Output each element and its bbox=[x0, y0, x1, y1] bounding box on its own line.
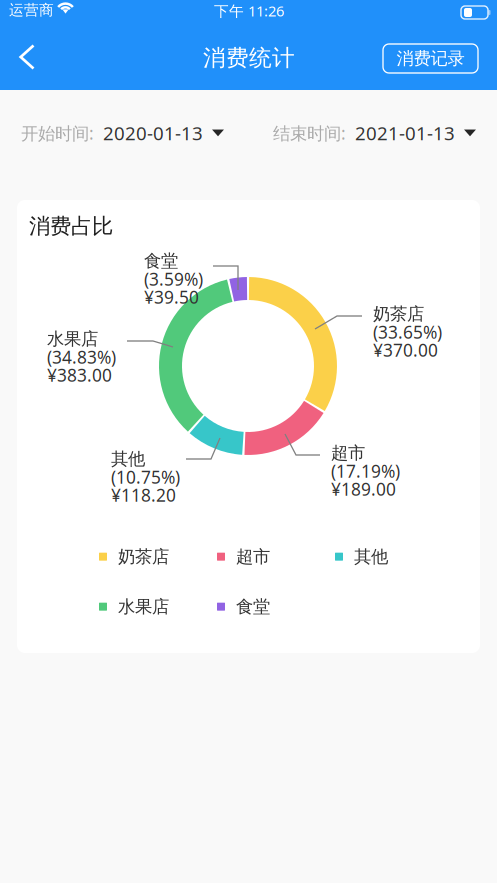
staticText: (3.59%) bbox=[144, 267, 203, 290]
button[interactable]: 开始时间: bbox=[21, 121, 224, 145]
staticText: 食堂 bbox=[144, 250, 178, 272]
staticText: 奶茶店 bbox=[118, 546, 169, 567]
staticText: 超市 bbox=[236, 546, 270, 567]
staticText: ¥383.00 bbox=[47, 363, 112, 386]
staticText: 超市 bbox=[331, 442, 365, 464]
staticText: 水果店 bbox=[118, 596, 169, 617]
staticText: 食堂 bbox=[236, 596, 270, 617]
staticText: 其他 bbox=[354, 546, 388, 567]
staticText: 消费统计 bbox=[203, 44, 295, 72]
staticText: 其他 bbox=[111, 448, 145, 470]
staticText: 结束时间: bbox=[273, 121, 346, 144]
staticText: 运营商 bbox=[9, 1, 54, 19]
staticText: 水果店 bbox=[47, 328, 98, 350]
staticText: (17.19%) bbox=[331, 459, 400, 482]
staticText: ¥118.20 bbox=[111, 483, 176, 506]
staticText: (33.65%) bbox=[373, 320, 442, 343]
button[interactable]: 消费记录 bbox=[383, 44, 478, 73]
staticText: 2021-01-13 bbox=[355, 121, 455, 145]
staticText: ¥39.50 bbox=[144, 285, 199, 308]
staticText: (10.75%) bbox=[111, 465, 180, 488]
staticText: 奶茶店 bbox=[373, 303, 424, 325]
button[interactable]: 返回 bbox=[5, 35, 49, 79]
staticText: 2020-01-13 bbox=[103, 121, 203, 145]
staticText: 下午 11:26 bbox=[214, 1, 284, 20]
staticText: ¥189.00 bbox=[331, 477, 396, 500]
staticText: 消费占比 bbox=[29, 213, 113, 239]
button[interactable]: 结束时间: bbox=[273, 121, 476, 145]
staticText: (34.83%) bbox=[47, 345, 116, 368]
staticText: ¥370.00 bbox=[373, 338, 438, 361]
staticText: 开始时间: bbox=[21, 121, 94, 144]
staticText: 消费记录 bbox=[396, 48, 464, 69]
